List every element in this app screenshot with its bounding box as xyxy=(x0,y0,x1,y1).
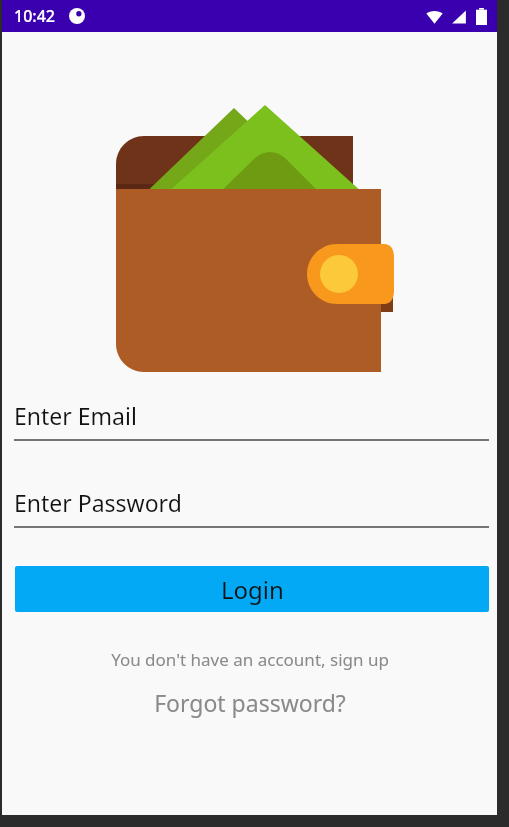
staticText: Login xyxy=(221,573,284,606)
button[interactable]: Forgot password? xyxy=(2,687,497,718)
staticText: You don't have an account, sign up xyxy=(111,648,389,671)
button[interactable]: Login xyxy=(15,566,489,612)
button[interactable]: Enter Password xyxy=(14,487,489,528)
button[interactable]: Enter Email xyxy=(14,400,489,441)
staticText: Enter Password xyxy=(14,487,182,518)
button[interactable]: You don't have an account, sign up xyxy=(2,648,497,671)
staticText: Forgot password? xyxy=(154,687,346,718)
staticText: Enter Email xyxy=(14,400,137,431)
staticText: 10:42 xyxy=(14,5,55,27)
